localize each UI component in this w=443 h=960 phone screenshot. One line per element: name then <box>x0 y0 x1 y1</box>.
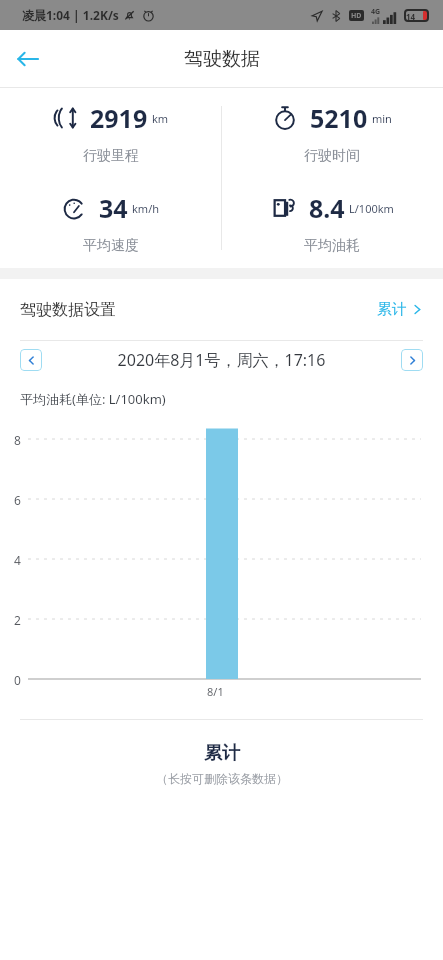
staticText: 平均速度 <box>83 237 139 255</box>
button[interactable]: 5210 <box>221 88 443 178</box>
staticText: 行驶里程 <box>83 147 139 165</box>
button[interactable]: 累计 <box>0 742 443 786</box>
button[interactable]: Next day <box>401 349 423 371</box>
staticText: 平均油耗(单位: L/100km) <box>20 390 166 408</box>
staticText: 累计 <box>204 742 240 765</box>
button[interactable]: Back <box>0 31 56 87</box>
staticText: 4 <box>14 552 21 568</box>
staticText: 4G <box>371 7 381 17</box>
staticText: 0 <box>14 672 21 688</box>
staticText: 行驶时间 <box>304 147 360 165</box>
staticText: 34 <box>99 191 128 225</box>
button[interactable]: 驾驶数据设置 <box>0 279 443 340</box>
staticText: 2 <box>14 612 21 628</box>
staticText: 5210 <box>310 101 368 135</box>
staticText: 8 <box>14 432 21 448</box>
button[interactable]: 8.4 <box>221 178 443 268</box>
staticText: 6 <box>14 492 21 508</box>
staticText: （长按可删除该条数据） <box>156 771 288 786</box>
staticText: min <box>372 111 392 126</box>
staticText: km <box>152 111 169 126</box>
staticText: 凌晨1:04 | 1.2K/s <box>22 7 119 23</box>
staticText: 2919 <box>90 101 148 135</box>
staticText: 2020年8月1号，周六，17:16 <box>42 349 401 371</box>
staticText: 平均油耗 <box>304 237 360 255</box>
staticText: 驾驶数据 <box>184 47 260 71</box>
staticText: 14 <box>406 11 423 20</box>
button[interactable]: 2919 <box>0 88 221 178</box>
button[interactable]: Previous day <box>20 349 42 371</box>
staticText: 驾驶数据设置 <box>20 300 116 320</box>
staticText: L/100km <box>349 201 394 216</box>
button[interactable]: 34 <box>0 178 221 268</box>
staticText: km/h <box>132 201 160 216</box>
staticText: 累计 <box>377 300 407 319</box>
staticText: 8/1 <box>207 684 224 699</box>
staticText: HD <box>351 11 362 21</box>
staticText: 8.4 <box>309 191 345 225</box>
